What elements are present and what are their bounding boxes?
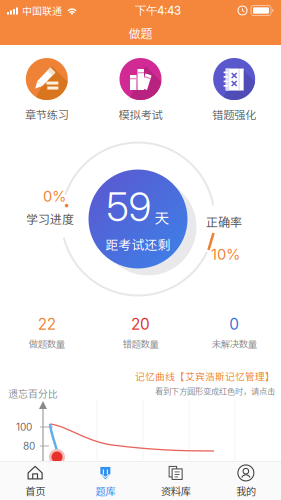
staticText: 资料库 <box>161 483 191 498</box>
staticText: 错题数量 <box>122 337 158 350</box>
staticText: 题库 <box>95 483 115 498</box>
button[interactable]: 首页 <box>0 463 70 498</box>
staticText: 距考试还剩 <box>105 235 170 253</box>
staticText: 22 <box>38 315 56 334</box>
button[interactable]: 22 <box>0 315 94 350</box>
button[interactable]: 我的 <box>211 463 281 498</box>
staticText: 下午4:43 <box>135 3 181 18</box>
staticText: 0% <box>43 188 66 205</box>
staticText: 记忆曲线【艾宾浩斯记忆管理】 <box>135 369 275 383</box>
staticText: 100 <box>16 421 32 433</box>
staticText: 80 <box>23 440 35 452</box>
staticText: 首页 <box>25 483 45 498</box>
button[interactable]: 记忆曲线【艾宾浩斯记忆管理】 <box>131 369 275 397</box>
button[interactable]: 题库 <box>70 463 140 498</box>
button[interactable]: 章节练习 <box>0 58 94 122</box>
staticText: 看到下方圆形变成红色时，请点击 <box>155 385 275 397</box>
button[interactable]: 模拟考试 <box>94 58 187 122</box>
staticText: 学习进度 <box>26 210 74 227</box>
staticText: 做题数量 <box>29 337 65 350</box>
staticText: 59 <box>106 182 151 231</box>
staticText: 20 <box>131 315 150 334</box>
staticText: 我的 <box>236 483 256 498</box>
button[interactable]: 0 <box>187 315 281 350</box>
staticText: 章节练习 <box>25 106 69 122</box>
staticText: 正确率 <box>206 213 242 230</box>
staticText: 遗忘百分比 <box>8 386 58 400</box>
staticText: 未解决数量 <box>212 337 257 350</box>
staticText: 10% <box>211 246 240 263</box>
button[interactable]: 错题强化 <box>187 58 281 122</box>
button[interactable]: 20 <box>94 315 187 350</box>
staticText: 0 <box>229 315 239 334</box>
staticText: 做题 <box>128 24 152 42</box>
staticText: 中国联通 <box>22 3 62 18</box>
staticText: 天 <box>154 207 169 228</box>
staticText: 模拟考试 <box>118 106 162 122</box>
staticText: 错题强化 <box>212 106 256 122</box>
button[interactable]: 资料库 <box>140 463 211 498</box>
